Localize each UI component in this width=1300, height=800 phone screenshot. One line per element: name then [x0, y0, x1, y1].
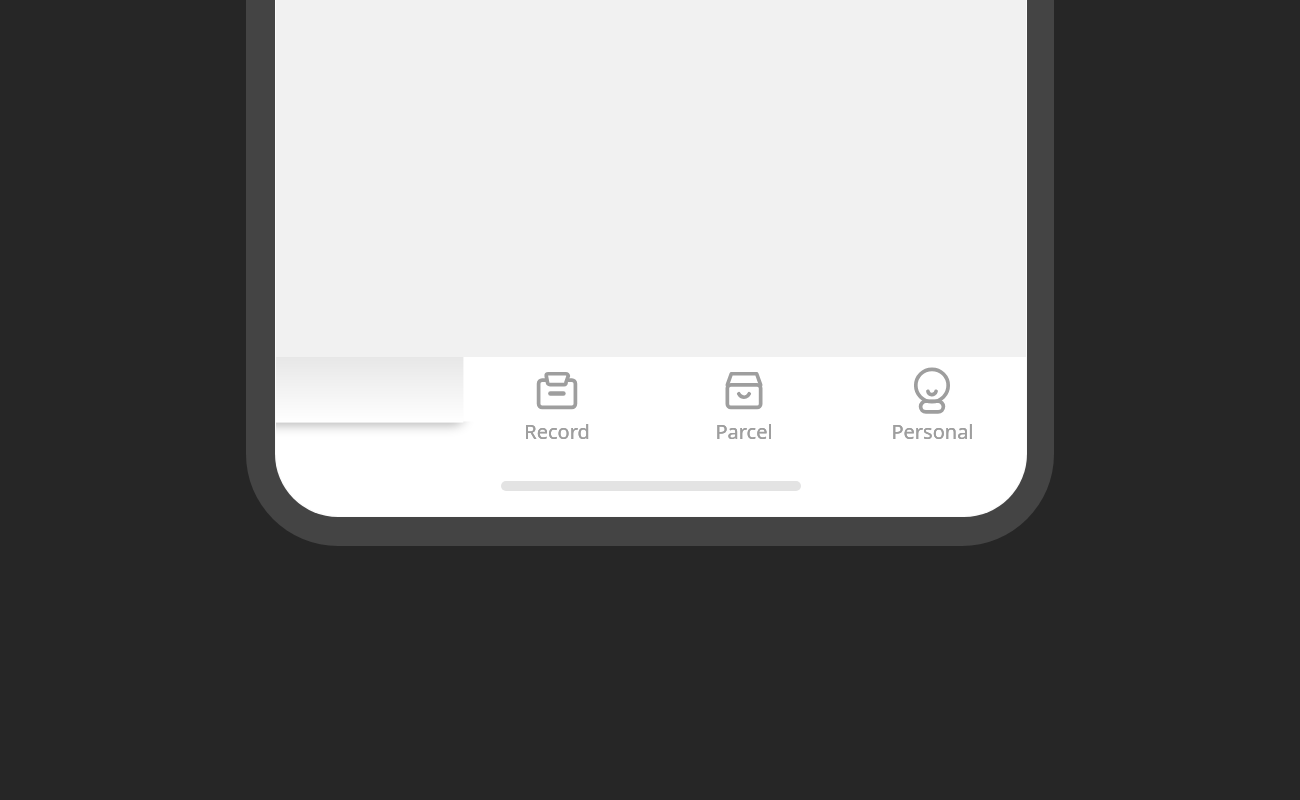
- button[interactable]: Home: [276, 357, 463, 447]
- staticText: Parcel: [715, 418, 773, 445]
- button[interactable]: Personal: [838, 357, 1026, 447]
- other: Record: [533, 366, 581, 414]
- staticText: Personal: [891, 418, 974, 445]
- other: Personal: [908, 366, 956, 414]
- staticText: Parcel: [715, 418, 773, 445]
- staticText: Record: [524, 418, 590, 445]
- button[interactable]: Parcel: [650, 357, 838, 447]
- staticText: Personal: [891, 418, 974, 445]
- staticText: Record: [524, 418, 590, 445]
- other: Parcel: [720, 366, 768, 414]
- button[interactable]: Record: [463, 357, 650, 447]
